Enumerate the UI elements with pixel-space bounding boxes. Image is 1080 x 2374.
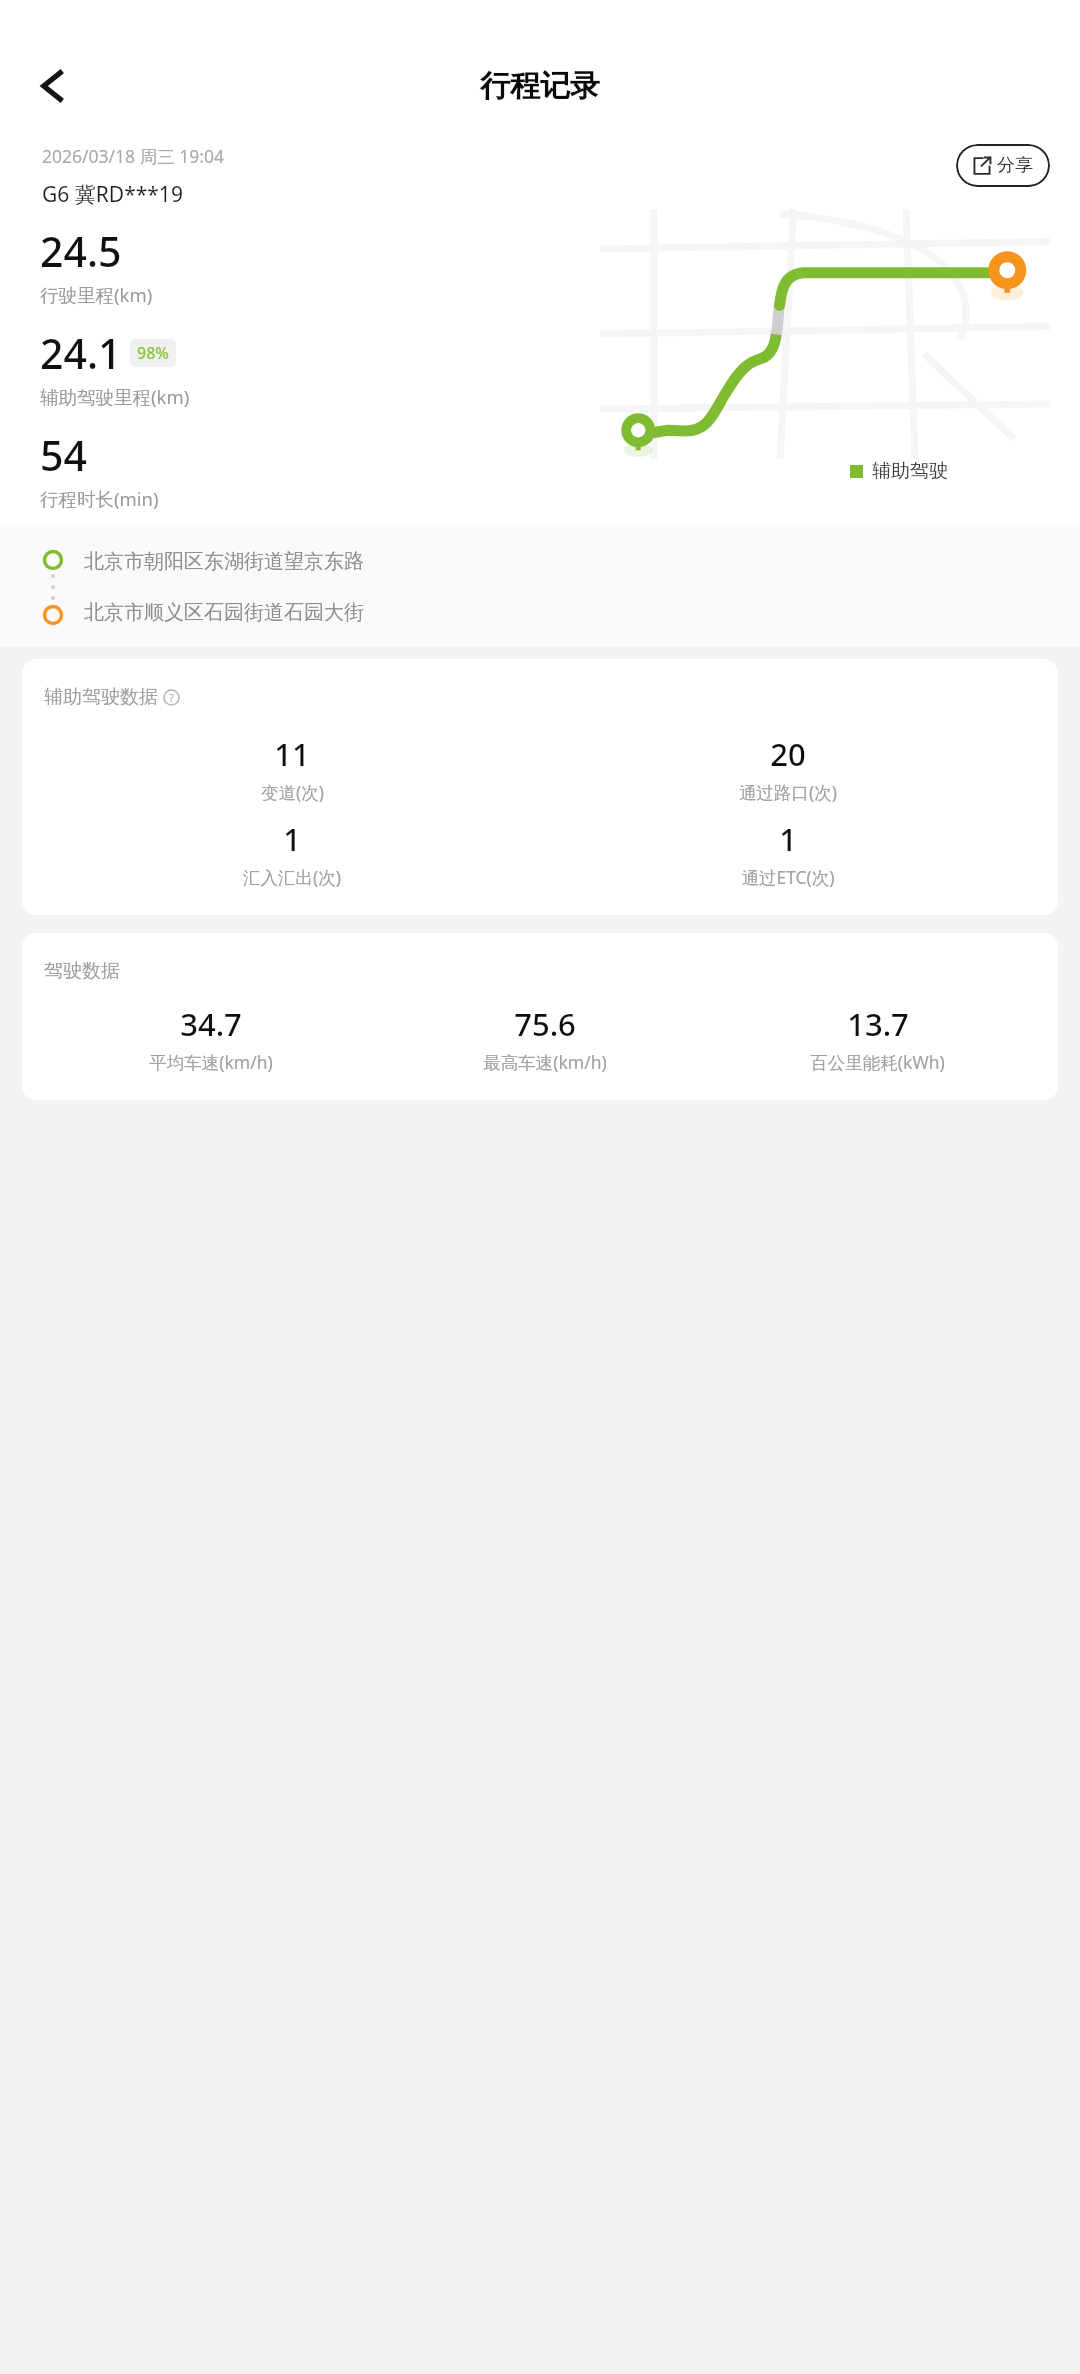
staticText: ? <box>169 690 174 705</box>
staticText: 1 <box>283 818 301 860</box>
staticText: 辅助驾驶数据 <box>44 685 158 709</box>
staticText: 通过ETC(次) <box>741 865 835 889</box>
staticText: 辅助驾驶里程(km) <box>40 384 190 409</box>
staticText: 分享 <box>997 154 1033 177</box>
staticText: 54 <box>40 427 87 483</box>
staticText: 34.7 <box>180 1003 242 1045</box>
staticText: 变道(次) <box>261 780 324 804</box>
staticText: 2026/03/18 周三 19:04 <box>42 144 224 168</box>
staticText: 辅助驾驶 <box>872 459 948 483</box>
staticText: 行驶里程(km) <box>40 282 153 307</box>
button[interactable]: 分享 <box>956 144 1050 187</box>
staticText: 98% <box>137 342 169 364</box>
staticText: G6 冀RD***19 <box>42 180 183 209</box>
staticText: 行程记录 <box>480 67 600 105</box>
staticText: 20 <box>770 733 806 775</box>
staticText: 北京市朝阳区东湖街道望京东路 <box>84 549 364 574</box>
staticText: 24.5 <box>40 223 122 279</box>
staticText: 通过路口(次) <box>739 780 837 804</box>
staticText: 11 <box>274 733 310 775</box>
staticText: 24.1 <box>40 325 122 381</box>
staticText: 平均车速(km/h) <box>149 1050 273 1074</box>
staticText: 汇入汇出(次) <box>243 865 341 889</box>
staticText: 北京市顺义区石园街道石园大街 <box>84 600 364 625</box>
button[interactable]: Back <box>22 55 84 117</box>
staticText: 百公里能耗(kWh) <box>810 1050 945 1074</box>
staticText: 驾驶数据 <box>44 959 120 983</box>
staticText: 最高车速(km/h) <box>483 1050 607 1074</box>
staticText: 13.7 <box>847 1003 909 1045</box>
staticText: 75.6 <box>514 1003 576 1045</box>
staticText: 行程时长(min) <box>40 486 159 511</box>
button[interactable]: 说明 <box>163 689 180 706</box>
staticText: 1 <box>779 818 797 860</box>
